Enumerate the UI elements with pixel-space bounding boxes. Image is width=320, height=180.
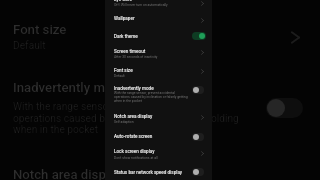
staticText: Auto-rotate screen [114, 134, 153, 139]
staticText: Default [13, 40, 46, 52]
staticText: With the range sensor, prevent accidenta… [13, 101, 239, 135]
button[interactable]: Wallpaper [201, 18, 204, 23]
staticText: Inadvertently mode [13, 80, 127, 95]
button[interactable]: Inadvertently mode [192, 86, 204, 94]
staticText: Wallpaper [114, 16, 135, 21]
button[interactable]: Dark theme [192, 32, 206, 40]
button[interactable]: Auto-rotate screen [105, 131, 212, 146]
button[interactable]: Screen timeout [201, 50, 204, 55]
staticText: Default [114, 74, 125, 78]
button[interactable]: Screen timeout [105, 45, 212, 62]
button[interactable]: Dark theme [105, 28, 212, 45]
staticText: Self adaption [114, 120, 134, 124]
staticText: Lock screen display [114, 149, 155, 154]
button[interactable]: Open setting [289, 31, 302, 44]
button[interactable]: Eye Care [201, 1, 204, 6]
staticText: Inadvertently mode [114, 86, 154, 91]
staticText: Notch area display [114, 114, 153, 119]
button[interactable]: Font size [201, 69, 204, 74]
staticText: Don't show notifications at all [114, 156, 158, 160]
staticText: Font size [114, 68, 133, 73]
staticText: Notch area display [13, 167, 123, 180]
button[interactable]: Status bar network speed display [192, 168, 204, 176]
button[interactable]: Lock screen display [201, 151, 204, 156]
button[interactable]: Eye Care [105, 0, 212, 12]
button[interactable]: Font size [105, 62, 212, 80]
button[interactable]: Toggle setting [266, 98, 303, 118]
staticText: Font size [13, 22, 67, 37]
staticText: With the range sensor, prevent accidenta… [114, 91, 188, 103]
button[interactable]: Auto-rotate screen [192, 133, 204, 141]
button[interactable]: Lock screen display [105, 146, 212, 164]
staticText: After 30 seconds of inactivity [114, 55, 158, 59]
staticText: Screen timeout [114, 49, 146, 54]
button[interactable]: Status bar network speed display [105, 166, 212, 180]
staticText: Dark theme [114, 34, 138, 39]
staticText: Off | Will never turn on automatically [114, 3, 168, 7]
button[interactable]: Notch area display [201, 115, 204, 120]
staticText: Eye Care [114, 0, 132, 2]
button[interactable]: Notch area display [105, 110, 212, 128]
button[interactable]: Inadvertently mode [105, 80, 212, 106]
staticText: Status bar network speed display [114, 170, 183, 175]
button[interactable]: Wallpaper [105, 12, 212, 28]
